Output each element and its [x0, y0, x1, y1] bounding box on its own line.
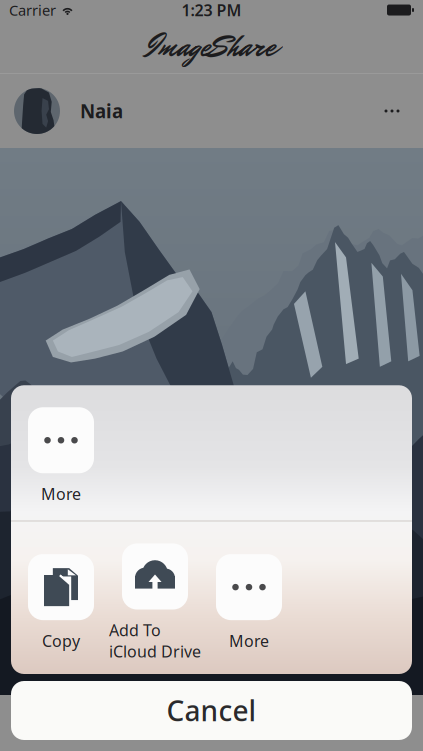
- staticText: More: [229, 630, 269, 651]
- staticText: Cancel: [166, 692, 256, 729]
- staticText: ImageShare: [147, 25, 276, 68]
- button[interactable]: Copy: [14, 554, 108, 651]
- button[interactable]: More: [202, 554, 296, 651]
- staticText: Naia: [80, 99, 123, 123]
- button[interactable]: More: [14, 407, 108, 504]
- button[interactable]: More options: [369, 88, 415, 134]
- button[interactable]: Cancel: [11, 681, 412, 740]
- staticText: 1:23 PM: [181, 0, 241, 21]
- staticText: More: [41, 483, 81, 504]
- button[interactable]: Add To iCloud Drive: [108, 543, 202, 662]
- staticText: Copy: [42, 630, 80, 651]
- staticText: Add To iCloud Drive: [109, 619, 201, 662]
- staticText: Carrier: [9, 0, 56, 20]
